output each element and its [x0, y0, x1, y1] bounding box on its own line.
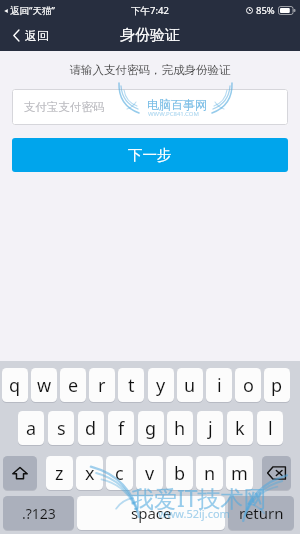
- button[interactable]: q: [2, 368, 28, 402]
- staticText: d: [85, 416, 97, 441]
- button[interactable]: h: [167, 411, 193, 445]
- staticText: q: [9, 373, 21, 398]
- staticText: k: [235, 416, 245, 441]
- staticText: c: [115, 461, 124, 486]
- button[interactable]: Shift: [3, 456, 37, 490]
- button[interactable]: .?123: [3, 496, 74, 530]
- button[interactable]: p: [264, 368, 290, 402]
- staticText: 身份验证: [120, 26, 180, 45]
- staticText: 85%: [256, 4, 275, 17]
- staticText: r: [98, 373, 106, 398]
- button[interactable]: a: [18, 411, 44, 445]
- button[interactable]: 返回“天猫”: [2, 4, 56, 17]
- button[interactable]: t: [118, 368, 144, 402]
- button[interactable]: c: [106, 456, 133, 490]
- staticText: 返回“天猫”: [10, 4, 55, 17]
- staticText: z: [55, 461, 64, 486]
- staticText: n: [204, 461, 216, 486]
- button[interactable]: x: [76, 456, 103, 490]
- button[interactable]: u: [177, 368, 203, 402]
- staticText: m: [231, 461, 248, 486]
- button[interactable]: y: [148, 368, 174, 402]
- button[interactable]: s: [48, 411, 74, 445]
- staticText: y: [156, 373, 166, 398]
- staticText: 请输入支付密码，完成身份验证: [0, 63, 300, 77]
- button[interactable]: 下一步: [12, 138, 288, 172]
- staticText: p: [271, 373, 283, 398]
- staticText: 下午7:42: [131, 4, 169, 17]
- button[interactable]: space: [77, 496, 225, 530]
- staticText: x: [85, 461, 95, 486]
- button[interactable]: e: [60, 368, 86, 402]
- other: Shift: [12, 466, 28, 481]
- button[interactable]: n: [196, 456, 223, 490]
- staticText: o: [243, 373, 254, 398]
- staticText: i: [217, 373, 222, 398]
- staticText: .?123: [22, 504, 56, 523]
- staticText: space: [131, 503, 172, 523]
- button[interactable]: return: [228, 496, 294, 530]
- button[interactable]: w: [31, 368, 57, 402]
- button[interactable]: m: [226, 456, 253, 490]
- button[interactable]: v: [136, 456, 163, 490]
- staticText: 下一步: [128, 146, 172, 164]
- button[interactable]: 返回: [0, 20, 59, 51]
- staticText: t: [128, 373, 135, 398]
- button[interactable]: l: [257, 411, 283, 445]
- button[interactable]: f: [108, 411, 134, 445]
- button[interactable]: z: [46, 456, 73, 490]
- staticText: 返回: [25, 28, 49, 43]
- staticText: WWW.PC841.COM: [148, 110, 199, 118]
- staticText: b: [174, 461, 186, 486]
- staticText: www.52ij.com: [158, 506, 230, 521]
- staticText: g: [145, 416, 157, 441]
- button[interactable]: r: [89, 368, 115, 402]
- button[interactable]: d: [78, 411, 104, 445]
- staticText: j: [208, 416, 213, 441]
- button[interactable]: g: [138, 411, 164, 445]
- button[interactable]: k: [227, 411, 253, 445]
- staticText: return: [239, 503, 284, 523]
- staticText: w: [37, 373, 52, 398]
- staticText: f: [118, 416, 125, 441]
- staticText: 我爱IT技术网: [131, 482, 267, 513]
- staticText: 电脑百事网: [147, 97, 207, 112]
- staticText: u: [184, 373, 196, 398]
- staticText: h: [174, 416, 186, 441]
- staticText: l: [268, 416, 273, 441]
- staticText: e: [68, 373, 79, 398]
- button[interactable]: b: [166, 456, 193, 490]
- button[interactable]: o: [235, 368, 261, 402]
- button[interactable]: i: [206, 368, 232, 402]
- button[interactable]: Delete: [262, 456, 291, 490]
- staticText: v: [145, 461, 155, 486]
- button[interactable]: 支付宝支付密码: [12, 89, 288, 125]
- staticText: s: [57, 416, 66, 441]
- button[interactable]: j: [197, 411, 223, 445]
- staticText: 支付宝支付密码: [24, 100, 105, 114]
- other: Delete: [267, 466, 286, 480]
- staticText: a: [26, 416, 37, 441]
